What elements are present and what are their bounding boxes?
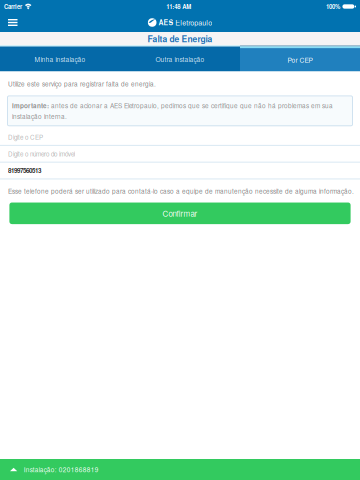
button[interactable]: Outra instalação bbox=[120, 45, 240, 71]
staticText: Eletropaulo bbox=[175, 17, 212, 28]
staticText: Digite o número do imóvel bbox=[8, 149, 75, 158]
staticText: Utilize este serviço para registrar falt… bbox=[8, 79, 156, 88]
staticText: Por CEP bbox=[287, 55, 312, 64]
staticText: Falta de Energia bbox=[147, 33, 212, 45]
button[interactable]: Por CEP bbox=[240, 45, 360, 71]
button[interactable]: Confirmar bbox=[0, 202, 360, 224]
staticText: AES bbox=[158, 17, 173, 27]
staticText: Carrier bbox=[4, 2, 22, 11]
staticText: 81997560513 bbox=[8, 166, 41, 175]
staticText: Outra instalação bbox=[155, 54, 204, 64]
staticText: Minha instalação bbox=[34, 54, 85, 64]
staticText: Confirmar bbox=[162, 208, 197, 219]
button[interactable]: Instalação: 0201868819 bbox=[0, 459, 360, 480]
staticText: Importante: antes de acionar a AES Eletr… bbox=[12, 101, 333, 121]
staticText: 100% bbox=[326, 2, 340, 11]
staticText: 11:48 AM bbox=[166, 2, 191, 11]
button[interactable]: Minha instalação bbox=[0, 45, 120, 71]
button[interactable]: Menu bbox=[0, 13, 28, 32]
staticText: Esse telefone poderá ser utilizado para … bbox=[8, 186, 354, 196]
staticText: Digite o CEP bbox=[8, 132, 43, 141]
staticText: Instalação: 0201868819 bbox=[24, 465, 99, 474]
